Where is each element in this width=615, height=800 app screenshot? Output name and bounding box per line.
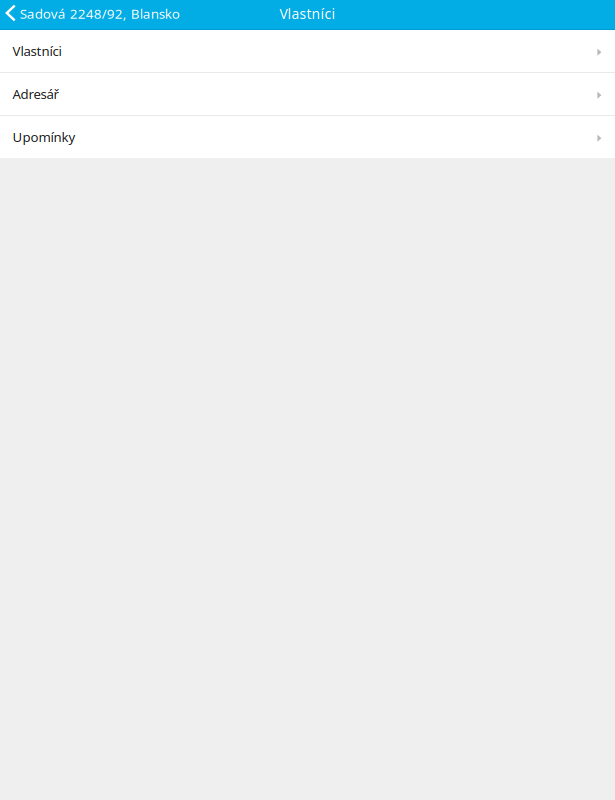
staticText: Upomínky bbox=[13, 128, 76, 146]
button[interactable]: Sadová 2248/92, Blansko bbox=[0, 0, 186, 29]
button[interactable]: Upomínky bbox=[0, 116, 615, 158]
button[interactable]: Adresář bbox=[0, 73, 615, 115]
staticText: Sadová 2248/92, Blansko bbox=[20, 4, 180, 23]
staticText: Adresář bbox=[13, 85, 59, 103]
staticText: Vlastníci bbox=[13, 42, 62, 60]
staticText: Vlastníci bbox=[279, 4, 335, 23]
button[interactable]: Vlastníci bbox=[0, 30, 615, 72]
